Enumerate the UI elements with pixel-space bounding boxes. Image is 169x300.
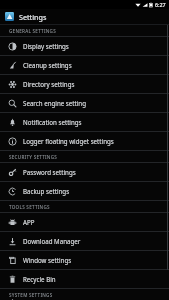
staticText: Directory settings <box>23 80 75 88</box>
staticText: Cleanup settings <box>23 61 72 69</box>
button[interactable]: Logger floating widget settings <box>0 132 169 150</box>
button[interactable]: App icon <box>5 12 14 21</box>
staticText: SYSTEM SETTINGS <box>9 292 53 298</box>
button[interactable]: Display settings <box>0 37 169 55</box>
staticText: 6:27 <box>155 1 166 8</box>
staticText: Notification settings <box>23 118 82 126</box>
staticText: APP <box>23 218 35 226</box>
staticText: Settings <box>19 12 47 22</box>
button[interactable]: Recycle Bin <box>0 270 169 288</box>
staticText: Display settings <box>23 42 69 50</box>
staticText: Logger floating widget settings <box>23 137 114 145</box>
button[interactable]: Notification settings <box>0 113 169 131</box>
staticText: Window settings <box>23 256 72 264</box>
staticText: Search engine setting <box>23 99 86 107</box>
staticText: Backup settings <box>23 187 70 195</box>
staticText: Password settings <box>23 168 76 176</box>
button[interactable]: Directory settings <box>0 75 169 93</box>
button[interactable]: Backup settings <box>0 182 169 200</box>
staticText: Recycle Bin <box>23 275 56 283</box>
button[interactable]: Search engine setting <box>0 94 169 112</box>
button[interactable]: APP <box>0 213 169 231</box>
staticText: GENERAL SETTINGS <box>9 28 56 34</box>
button[interactable]: Download Manager <box>0 232 169 250</box>
staticText: Download Manager <box>23 237 81 245</box>
staticText: TOOLS SETTINGS <box>9 204 50 210</box>
staticText: SECURITY SETTINGS <box>9 154 58 160</box>
button[interactable]: Window settings <box>0 251 169 269</box>
button[interactable]: Password settings <box>0 163 169 181</box>
button[interactable]: Cleanup settings <box>0 56 169 74</box>
